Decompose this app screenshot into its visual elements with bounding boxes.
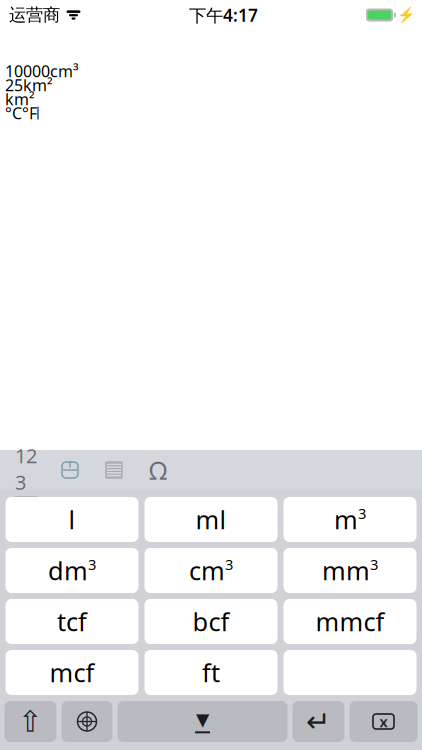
staticText: 25km² [5,74,53,96]
button[interactable]: tcf [5,599,138,644]
staticText: 3 [358,504,366,523]
staticText: dm [48,554,88,587]
staticText: 运营商 [9,4,60,26]
button[interactable]: ft [144,650,277,695]
button[interactable]: ml [144,497,277,542]
staticText: 3 [370,555,378,574]
button[interactable]: l [5,497,138,542]
staticText: ml [195,503,226,536]
staticText: °C°F [5,102,37,124]
button[interactable]: Shift [4,701,56,742]
staticText: ⚡ [397,7,415,23]
button[interactable]: Delete [349,701,417,742]
staticText: ↵ [306,705,331,738]
staticText: 3 [88,555,96,574]
staticText: km² [5,88,35,110]
staticText: 123 [15,442,37,495]
staticText: bcf [192,605,229,638]
staticText: tcf [57,605,87,638]
button[interactable]: Other units [136,451,180,489]
staticText: ▼ [196,710,209,729]
button[interactable]: cm [144,548,277,593]
button[interactable]: Numbers [4,451,48,489]
staticText: m [334,503,358,536]
staticText: 下午4:17 [189,3,258,26]
staticText: mm [322,554,370,587]
button[interactable]: Area units [92,451,136,489]
button[interactable]: m [283,497,416,542]
button[interactable]: Volume units [48,451,92,489]
staticText: mcf [49,656,94,689]
button[interactable]: mmcf [283,599,416,644]
staticText: x [379,712,387,731]
button[interactable]: Next keyboard [61,701,112,742]
staticText: cm [189,554,225,587]
button[interactable]: dm [5,548,138,593]
staticText: 10000cm³ [5,60,79,82]
staticText: Ω [149,453,167,487]
staticText: ⇧ [18,705,43,738]
staticText: 3 [225,555,233,574]
button[interactable]: Return [292,701,344,742]
staticText: mmcf [315,605,384,638]
button[interactable]: bcf [144,599,277,644]
staticText: ft [202,656,220,689]
button[interactable]: mm [283,548,416,593]
staticText: l [68,503,75,536]
button[interactable]: Hide keyboard [117,701,287,742]
button[interactable]: mcf [5,650,138,695]
